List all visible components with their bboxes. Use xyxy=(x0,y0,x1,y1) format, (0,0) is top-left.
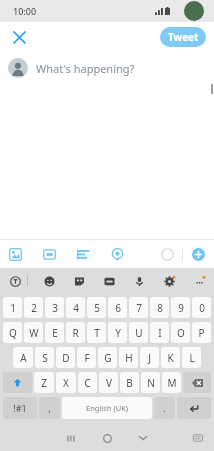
staticText: R xyxy=(72,326,79,340)
button[interactable]: C xyxy=(78,372,97,393)
staticText: N xyxy=(147,376,155,390)
staticText: V xyxy=(106,376,112,390)
button[interactable]: Switch keyboard xyxy=(188,428,208,448)
staticText: F xyxy=(84,351,90,365)
button[interactable]: 1 xyxy=(3,297,22,318)
staticText: J xyxy=(148,351,151,365)
button[interactable]: 9 xyxy=(171,297,190,318)
staticText: 3 xyxy=(52,301,58,315)
staticText: Z xyxy=(41,376,47,390)
button[interactable]: Home xyxy=(95,426,119,450)
staticText: I xyxy=(158,326,162,340)
button[interactable]: Add location xyxy=(107,244,127,264)
staticText: 6 xyxy=(115,301,121,315)
button[interactable]: F xyxy=(77,347,96,368)
staticText: . xyxy=(163,402,166,414)
button[interactable]: GIF keyboard xyxy=(100,272,118,290)
button[interactable]: P xyxy=(192,322,211,343)
button[interactable]: L xyxy=(182,347,201,368)
button[interactable]: M xyxy=(162,372,181,393)
staticText: What's happening? xyxy=(36,61,135,76)
staticText: 8 xyxy=(157,301,163,315)
staticText: W xyxy=(29,326,39,340)
button[interactable]: 5 xyxy=(87,297,106,318)
button[interactable]: S xyxy=(35,347,54,368)
staticText: X xyxy=(63,376,69,390)
button[interactable]: B xyxy=(120,372,139,393)
button[interactable]: N xyxy=(141,372,160,393)
button[interactable]: K xyxy=(161,347,180,368)
button[interactable]: Recents xyxy=(59,426,83,450)
button[interactable]: A xyxy=(13,347,33,368)
button[interactable]: W xyxy=(24,322,43,343)
button[interactable]: Enter xyxy=(177,397,211,419)
button[interactable]: R xyxy=(66,322,85,343)
button[interactable]: Characters left xyxy=(157,244,177,264)
button[interactable]: Stickers xyxy=(70,272,88,290)
button[interactable]: More options xyxy=(190,272,208,290)
button[interactable]: H xyxy=(119,347,138,368)
button[interactable]: V xyxy=(99,372,118,393)
button[interactable]: 3 xyxy=(45,297,64,318)
staticText: !#1 xyxy=(13,402,27,414)
staticText: , xyxy=(48,402,51,414)
button[interactable]: Y xyxy=(108,322,127,343)
staticText: 2 xyxy=(31,301,37,315)
staticText: 10:00 xyxy=(13,5,37,17)
staticText: 7 xyxy=(136,301,142,315)
button[interactable]: Add GIF xyxy=(39,244,59,264)
staticText: 5 xyxy=(94,301,100,315)
button[interactable]: Keyboard settings xyxy=(160,272,178,290)
button[interactable]: E xyxy=(45,322,64,343)
button[interactable]: English (UK) xyxy=(62,397,152,419)
button[interactable]: 4 xyxy=(66,297,85,318)
button[interactable]: J xyxy=(140,347,159,368)
staticText: D xyxy=(62,351,70,365)
button[interactable]: Add photo xyxy=(5,244,25,264)
button[interactable]: 0 xyxy=(192,297,211,318)
button[interactable]: I xyxy=(150,322,169,343)
staticText: S xyxy=(42,351,48,365)
staticText: T xyxy=(94,326,100,340)
button[interactable]: , xyxy=(39,397,60,419)
button[interactable]: Emoji xyxy=(40,272,58,290)
button[interactable]: X xyxy=(56,372,76,393)
button[interactable]: Z xyxy=(34,372,54,393)
button[interactable]: Voice input xyxy=(130,272,148,290)
staticText: Tweet xyxy=(168,30,199,44)
staticText: P xyxy=(198,326,205,340)
button[interactable]: Add poll xyxy=(73,244,93,264)
staticText: O xyxy=(177,326,185,340)
staticText: L xyxy=(189,351,195,365)
staticText: H xyxy=(125,351,133,365)
button[interactable]: 6 xyxy=(108,297,127,318)
button[interactable]: 7 xyxy=(129,297,148,318)
button[interactable]: 8 xyxy=(150,297,169,318)
button[interactable]: . xyxy=(154,397,175,419)
button[interactable]: G xyxy=(98,347,117,368)
button[interactable]: Q xyxy=(3,322,22,343)
button[interactable]: Translate xyxy=(6,272,24,290)
staticText: M xyxy=(167,376,177,390)
button[interactable]: D xyxy=(56,347,75,368)
button[interactable]: U xyxy=(129,322,148,343)
button[interactable]: Close xyxy=(6,24,32,50)
button[interactable]: O xyxy=(171,322,190,343)
staticText: 9 xyxy=(178,301,184,315)
staticText: K xyxy=(167,351,174,365)
button[interactable]: Shift xyxy=(3,372,32,393)
button[interactable]: 2 xyxy=(24,297,43,318)
button[interactable]: Add tweet xyxy=(188,244,208,264)
staticText: A xyxy=(20,351,27,365)
staticText: B xyxy=(126,376,133,390)
staticText: E xyxy=(52,326,58,340)
staticText: Q xyxy=(9,326,17,340)
button[interactable]: T xyxy=(87,322,106,343)
staticText: English (UK) xyxy=(86,403,129,413)
staticText: U xyxy=(135,326,143,340)
button[interactable]: Backspace xyxy=(183,372,211,393)
button[interactable]: Hide keyboard xyxy=(131,426,155,450)
staticText: Y xyxy=(115,326,121,340)
button[interactable]: !#1 xyxy=(3,397,37,419)
button[interactable]: Tweet xyxy=(160,27,206,47)
